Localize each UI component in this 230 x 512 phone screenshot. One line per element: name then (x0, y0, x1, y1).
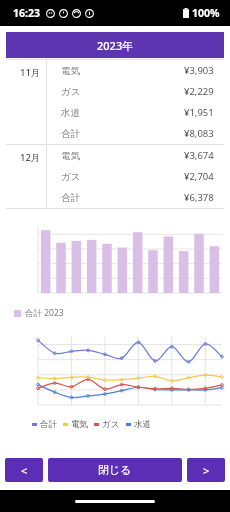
staticText: 11月 (20, 66, 41, 79)
staticText: 合計 (61, 192, 80, 204)
staticText: ¥8,083 (184, 127, 214, 140)
staticText: 水道 (134, 419, 151, 430)
staticText: ガス (61, 86, 81, 98)
staticText: 100% (192, 6, 220, 20)
staticText: 電気 (71, 419, 88, 430)
staticText: 12月 (20, 151, 41, 164)
staticText: 合計 (40, 419, 57, 430)
staticText: ¥1,951 (184, 106, 214, 119)
staticText: ¥3,674 (184, 149, 214, 162)
staticText: 2023年 (97, 38, 134, 53)
button[interactable]: 閉じる (48, 458, 182, 482)
staticText: ガス (102, 419, 120, 430)
staticText: 閉じる (98, 463, 132, 477)
staticText: < (21, 463, 28, 478)
button[interactable]: 2023年 (6, 32, 224, 58)
staticText: 水道 (61, 107, 80, 119)
staticText: 合計 (61, 128, 80, 140)
staticText: > (203, 463, 210, 478)
staticText: ¥6,378 (184, 191, 214, 204)
button[interactable]: Previous (5, 458, 43, 482)
staticText: 合計 2023 (25, 307, 64, 319)
button[interactable]: Next (187, 458, 225, 482)
staticText: ¥2,704 (184, 170, 214, 183)
staticText: ¥2,229 (184, 85, 214, 98)
staticText: ¥3,903 (184, 64, 214, 77)
staticText: 電気 (61, 65, 80, 77)
staticText: ガス (61, 171, 81, 183)
staticText: 16:23 (13, 6, 40, 20)
staticText: 電気 (61, 150, 80, 162)
